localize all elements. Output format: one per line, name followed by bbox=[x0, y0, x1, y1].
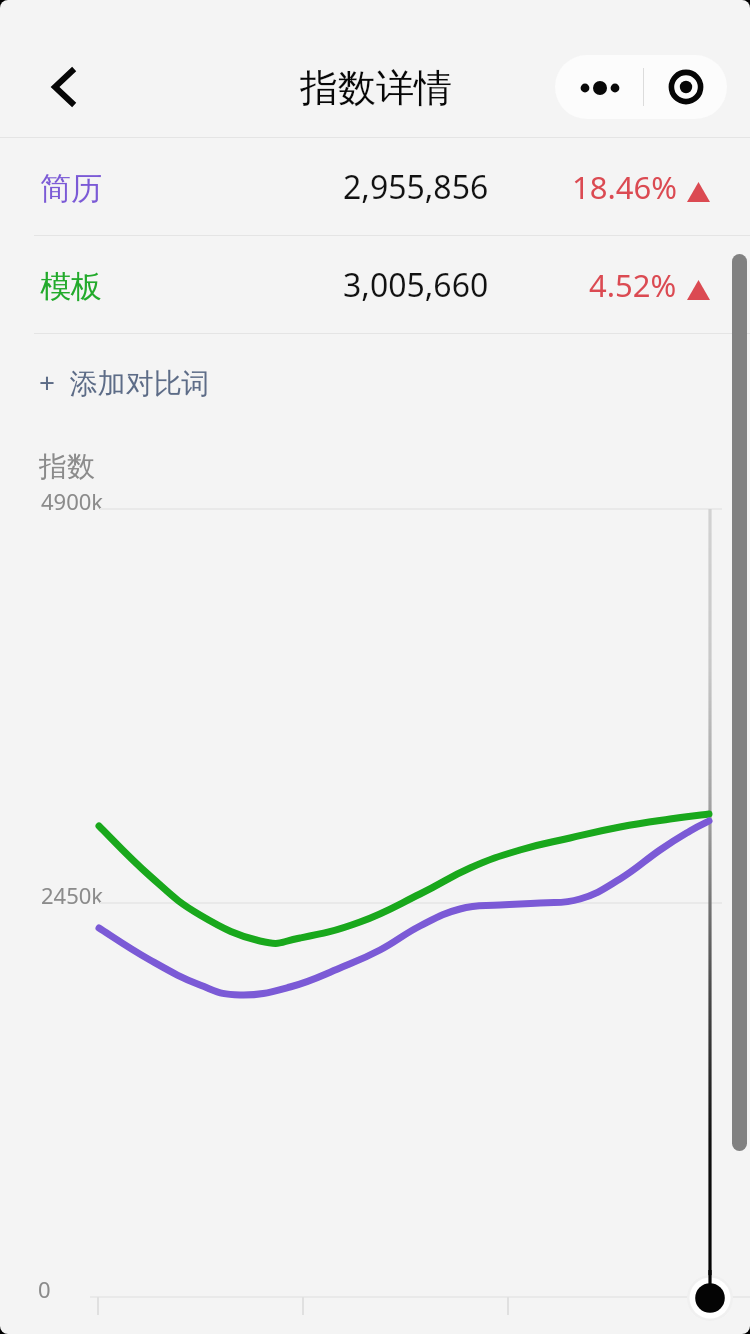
staticText: 简历 bbox=[40, 169, 102, 208]
button[interactable]: Close mini program bbox=[644, 55, 727, 119]
button[interactable]: + 添加对比词 bbox=[0, 334, 750, 430]
staticText: 4900k bbox=[41, 486, 104, 516]
staticText: 2,955,856 bbox=[343, 165, 489, 209]
button[interactable]: 简历 bbox=[0, 138, 750, 235]
staticText: 模板 bbox=[40, 267, 102, 306]
staticText: 3,005,660 bbox=[343, 263, 489, 307]
staticText: 2450k bbox=[41, 880, 104, 910]
staticText: + 添加对比词 bbox=[39, 363, 210, 401]
button[interactable]: 模板 bbox=[0, 236, 750, 333]
button[interactable]: Back bbox=[28, 52, 100, 124]
button[interactable]: More options bbox=[555, 55, 643, 119]
staticText: 0 bbox=[38, 1274, 51, 1304]
staticText: 4.52% bbox=[589, 264, 677, 306]
staticText: 18.46% bbox=[572, 166, 677, 208]
staticText: 指数详情 bbox=[300, 64, 452, 112]
staticText: 指数 bbox=[39, 449, 95, 484]
